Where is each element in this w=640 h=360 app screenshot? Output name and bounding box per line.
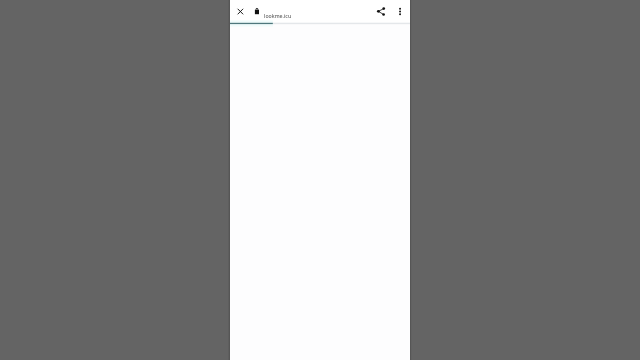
button[interactable]: More options: [389, 0, 410, 23]
button[interactable]: Close: [230, 0, 251, 23]
button[interactable]: lookme.icu: [251, 0, 367, 23]
button[interactable]: Share: [367, 0, 389, 23]
staticText: lookme.icu: [264, 12, 292, 19]
